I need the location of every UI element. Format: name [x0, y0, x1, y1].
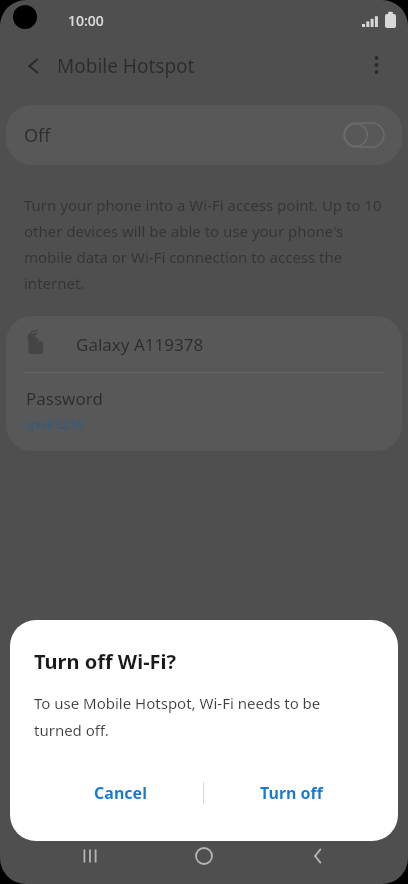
- button[interactable]: Back: [294, 832, 342, 880]
- button[interactable]: Back: [16, 48, 52, 84]
- staticText: Off: [24, 123, 51, 148]
- staticText: Galaxy A119378: [76, 333, 204, 356]
- staticText: To use Mobile Hotspot, Wi-Fi needs to be…: [34, 693, 368, 741]
- button[interactable]: Home: [180, 832, 228, 880]
- staticText: Cancel: [94, 782, 147, 804]
- button[interactable]: Cancel: [58, 771, 182, 815]
- staticText: Turn off: [260, 782, 323, 804]
- button[interactable]: More options: [362, 48, 394, 80]
- button[interactable]: Off: [6, 105, 402, 165]
- staticText: Turn your phone into a Wi-Fi access poin…: [24, 195, 384, 294]
- staticText: Turn off Wi-Fi?: [34, 648, 177, 675]
- staticText: Password: [26, 387, 103, 410]
- staticText: 10:00: [68, 11, 104, 30]
- button[interactable]: Turn off: [229, 771, 353, 815]
- staticText: qvsk3256: [26, 415, 84, 433]
- button[interactable]: Password: [6, 373, 402, 451]
- button[interactable]: Galaxy A119378: [6, 316, 402, 372]
- button[interactable]: Recents: [66, 832, 114, 880]
- staticText: Mobile Hotspot: [57, 53, 195, 79]
